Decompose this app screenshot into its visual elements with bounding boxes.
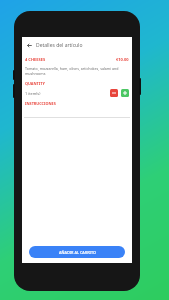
staticText: Detalles del artículo [36,42,83,49]
staticText: AÑADIR AL CARRITO [59,250,96,255]
staticText: QUANTITY [25,81,45,86]
staticText: INSTRUCCIONES [25,101,56,106]
staticText: Tomato, mozzarella, ham, olives, articho… [25,66,129,76]
staticText: €10.00 [116,57,129,62]
staticText: 1 item(s) [25,91,41,96]
button[interactable]: AÑADIR AL CARRITO [29,246,125,258]
button[interactable]: Back [22,38,36,52]
staticText: 4 CHEESES [25,57,46,62]
button[interactable]: Increase quantity [121,89,129,97]
button[interactable]: Decrease quantity [110,89,118,97]
